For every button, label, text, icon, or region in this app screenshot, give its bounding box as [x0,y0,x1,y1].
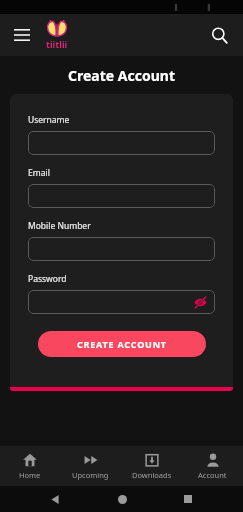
button[interactable]: Account [182,446,243,486]
staticText: Downloads [132,470,172,480]
button[interactable]: Home [110,487,134,511]
staticText: tiitlii [46,38,68,50]
staticText: Email [28,167,50,179]
button[interactable]: Upcoming [60,446,121,486]
staticText: Upcoming [72,470,109,480]
staticText: CREATE ACCOUNT [77,338,167,350]
button[interactable]: Menu [8,21,36,49]
button[interactable]: CREATE ACCOUNT [38,331,206,357]
button[interactable]: Back [43,487,67,511]
button[interactable]: Home [0,446,60,486]
staticText: Mobile Number [28,220,91,232]
staticText: Password [28,273,67,285]
button[interactable]: Downloads [121,446,182,486]
staticText: Home [19,470,41,480]
staticText: Username [28,114,70,126]
staticText: Create Account [68,66,175,85]
button[interactable]: Toggle password visibility [192,294,208,310]
button[interactable]: tiitlii [46,20,68,50]
button[interactable]: Username [28,131,215,155]
button[interactable]: Recents [176,487,200,511]
button[interactable]: Email [28,184,215,208]
staticText: Account [198,470,227,480]
button[interactable]: Password [28,290,215,314]
button[interactable]: Search [204,20,234,50]
button[interactable]: Mobile Number [28,237,215,261]
